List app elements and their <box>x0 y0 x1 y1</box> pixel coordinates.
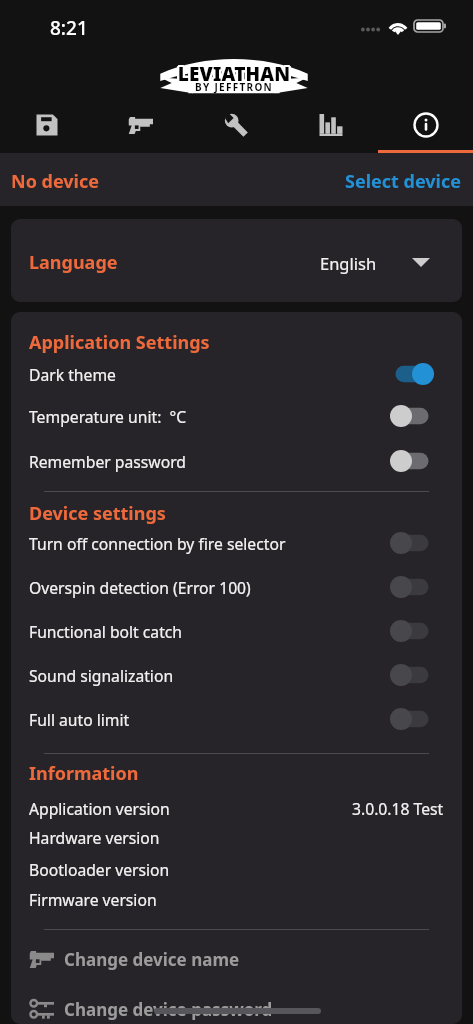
staticText: LEVIATHAN <box>159 61 311 87</box>
staticText: Bootloader version <box>29 859 444 880</box>
staticText: Firmware version <box>29 889 444 910</box>
button[interactable]: Save <box>0 100 94 153</box>
staticText: LEVIATHAN <box>157 60 309 86</box>
staticText: English <box>320 252 377 274</box>
button[interactable]: Dark theme <box>11 354 462 394</box>
staticText: LEVIATHAN <box>157 62 309 88</box>
button[interactable]: Change device password <box>11 991 462 1024</box>
button[interactable]: Full auto limit <box>11 699 462 739</box>
staticText: Temperature unit: °C <box>29 406 390 427</box>
staticText: Functional bolt catch <box>29 621 390 642</box>
button[interactable]: No device <box>11 169 100 194</box>
staticText: LEVIATHAN <box>158 62 310 88</box>
staticText: LEVIATHAN <box>157 63 309 89</box>
staticText: Full auto limit <box>29 709 390 730</box>
staticText: Information <box>29 761 139 786</box>
button[interactable]: Weapon <box>94 100 188 153</box>
button[interactable]: Statistics <box>283 100 378 153</box>
staticText: LEVIATHAN <box>158 60 310 86</box>
staticText: LEVIATHAN <box>159 59 311 85</box>
staticText: Change device password <box>64 998 273 1021</box>
staticText: LEVIATHAN <box>160 61 312 87</box>
button[interactable]: Turn off connection by fire selector <box>11 523 462 563</box>
button[interactable]: Settings <box>188 100 283 153</box>
staticText: LEVIATHAN <box>158 63 310 89</box>
button[interactable]: Select device <box>345 169 462 194</box>
staticText: Change device name <box>64 948 240 971</box>
staticText: LEVIATHAN <box>156 60 308 86</box>
staticText: Turn off connection by fire selector <box>29 533 390 554</box>
staticText: Application version <box>29 798 352 819</box>
staticText: LEVIATHAN <box>158 59 310 85</box>
button[interactable]: Overspin detection (Error 100) <box>11 567 462 607</box>
staticText: Sound signalization <box>29 665 390 686</box>
staticText: Overspin detection (Error 100) <box>29 577 390 598</box>
staticText: LEVIATHAN <box>156 62 308 88</box>
staticText: Dark theme <box>29 364 390 385</box>
staticText: BY JEFFTRON <box>158 80 310 94</box>
button[interactable]: Info <box>378 100 473 153</box>
staticText: 8:21 <box>50 15 88 41</box>
staticText: 3.0.0.18 Test <box>352 798 444 819</box>
staticText: LEVIATHAN <box>160 60 312 86</box>
button[interactable]: Language <box>11 219 462 302</box>
staticText: Device settings <box>29 501 166 526</box>
staticText: LEVIATHAN <box>159 60 311 86</box>
staticText: LEVIATHAN <box>157 61 309 87</box>
staticText: LEVIATHAN <box>160 62 312 88</box>
staticText: LEVIATHAN <box>159 62 311 88</box>
staticText: Application Settings <box>29 330 210 355</box>
staticText: LEVIATHAN <box>159 63 311 89</box>
staticText: LEVIATHAN <box>156 61 308 87</box>
button[interactable]: Temperature unit: °C <box>11 396 462 436</box>
button[interactable]: Remember password <box>11 441 462 481</box>
staticText: Language <box>29 250 118 275</box>
button[interactable]: Sound signalization <box>11 655 462 695</box>
staticText: LEVIATHAN <box>158 61 310 87</box>
button[interactable]: Functional bolt catch <box>11 611 462 651</box>
button[interactable]: Change device name <box>11 941 462 977</box>
staticText: LEVIATHAN <box>157 59 309 85</box>
staticText: LEVIATHAN <box>158 61 310 87</box>
staticText: Remember password <box>29 451 390 472</box>
staticText: Hardware version <box>29 827 444 848</box>
